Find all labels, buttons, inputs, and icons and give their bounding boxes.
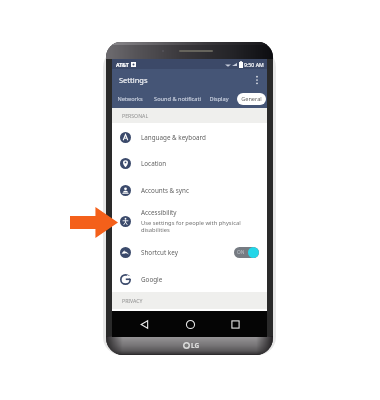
button[interactable]: More options [250, 69, 264, 90]
staticText: Google [141, 275, 163, 284]
button[interactable]: Back [131, 311, 157, 337]
button[interactable]: Sound & notificati [152, 90, 203, 108]
staticText: Accounts & sync [141, 186, 189, 195]
staticText: PERSONAL [122, 112, 149, 119]
button[interactable]: General [237, 90, 266, 108]
staticText: Accessibility [141, 208, 177, 217]
staticText: ON [237, 249, 245, 256]
staticText: Settings [119, 75, 148, 85]
button[interactable]: Google [112, 266, 267, 293]
button[interactable]: Shortcut key [112, 239, 267, 266]
staticText: AT&T [116, 61, 129, 68]
staticText: Networks [117, 95, 143, 103]
button[interactable]: Shortcut key toggle [234, 247, 259, 258]
staticText: LG [191, 341, 200, 350]
staticText: 9:50 AM [244, 61, 264, 68]
staticText: Sound & notificati [154, 95, 201, 103]
staticText: Language & keyboard [141, 133, 206, 142]
staticText: Location [141, 159, 167, 168]
staticText: Display [209, 95, 229, 103]
button[interactable]: Home [177, 311, 203, 337]
button[interactable]: Accessibility [112, 203, 267, 239]
button[interactable]: Recent apps [222, 311, 248, 337]
staticText: Shortcut key [141, 248, 178, 257]
button[interactable]: Networks [115, 90, 145, 108]
button[interactable]: Accounts & sync [112, 177, 267, 204]
button[interactable]: Location [112, 150, 267, 177]
staticText: Use settings for people with physical di… [141, 219, 249, 234]
staticText: General [241, 95, 262, 103]
button[interactable]: Language & keyboard [112, 124, 267, 151]
staticText: PRIVACY [122, 297, 143, 304]
button[interactable]: Display [209, 90, 229, 108]
